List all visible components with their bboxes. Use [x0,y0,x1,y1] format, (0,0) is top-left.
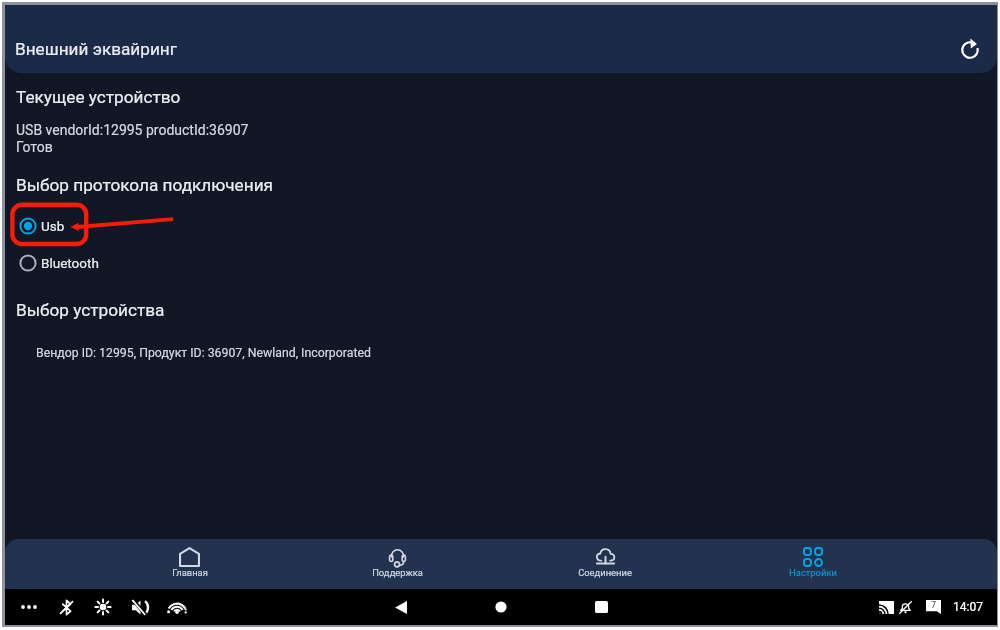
button[interactable]: Соединение [501,539,709,589]
staticText: Соединение [578,567,632,578]
staticText: Выбор устройства [16,300,165,320]
button[interactable]: Звук выкл [126,592,154,622]
staticText: Поддержка [372,567,423,578]
button[interactable]: Назад [387,592,415,622]
button[interactable]: Главный экран [487,592,515,622]
staticText: 7 [931,600,937,611]
button[interactable]: Главная [86,539,293,589]
button[interactable]: Wi-Fi [163,592,191,622]
staticText: Bluetooth [41,255,99,271]
button[interactable]: Обновить [953,33,987,67]
button[interactable]: Настройки [709,539,917,589]
staticText: Главная [172,567,208,578]
button[interactable]: Недавние [587,592,615,622]
button[interactable]: Поддержка [293,539,501,589]
button[interactable]: Яркость [89,592,117,622]
staticText: Вендор ID: 12995, Продукт ID: 36907, New… [36,346,371,360]
staticText: Выбор протокола подключения [16,175,273,195]
button[interactable]: Ещё [15,592,43,622]
button[interactable]: Трансляция [872,592,900,622]
staticText: Настройки [789,567,837,578]
staticText: Внешний эквайринг [15,39,177,59]
button[interactable]: Уведомления: 7 [919,592,947,622]
staticText: 14:07 [953,600,983,614]
staticText: USB vendorId:12995 productId:36907 [16,122,249,138]
button[interactable]: Уведомления выключены [891,592,919,622]
button[interactable]: Bluetooth [16,251,99,275]
button[interactable]: Usb [16,214,65,238]
staticText: Текущее устройство [16,87,181,107]
staticText: Usb [41,218,65,234]
button[interactable]: Bluetooth выкл [52,592,80,622]
staticText: Готов [16,139,53,155]
